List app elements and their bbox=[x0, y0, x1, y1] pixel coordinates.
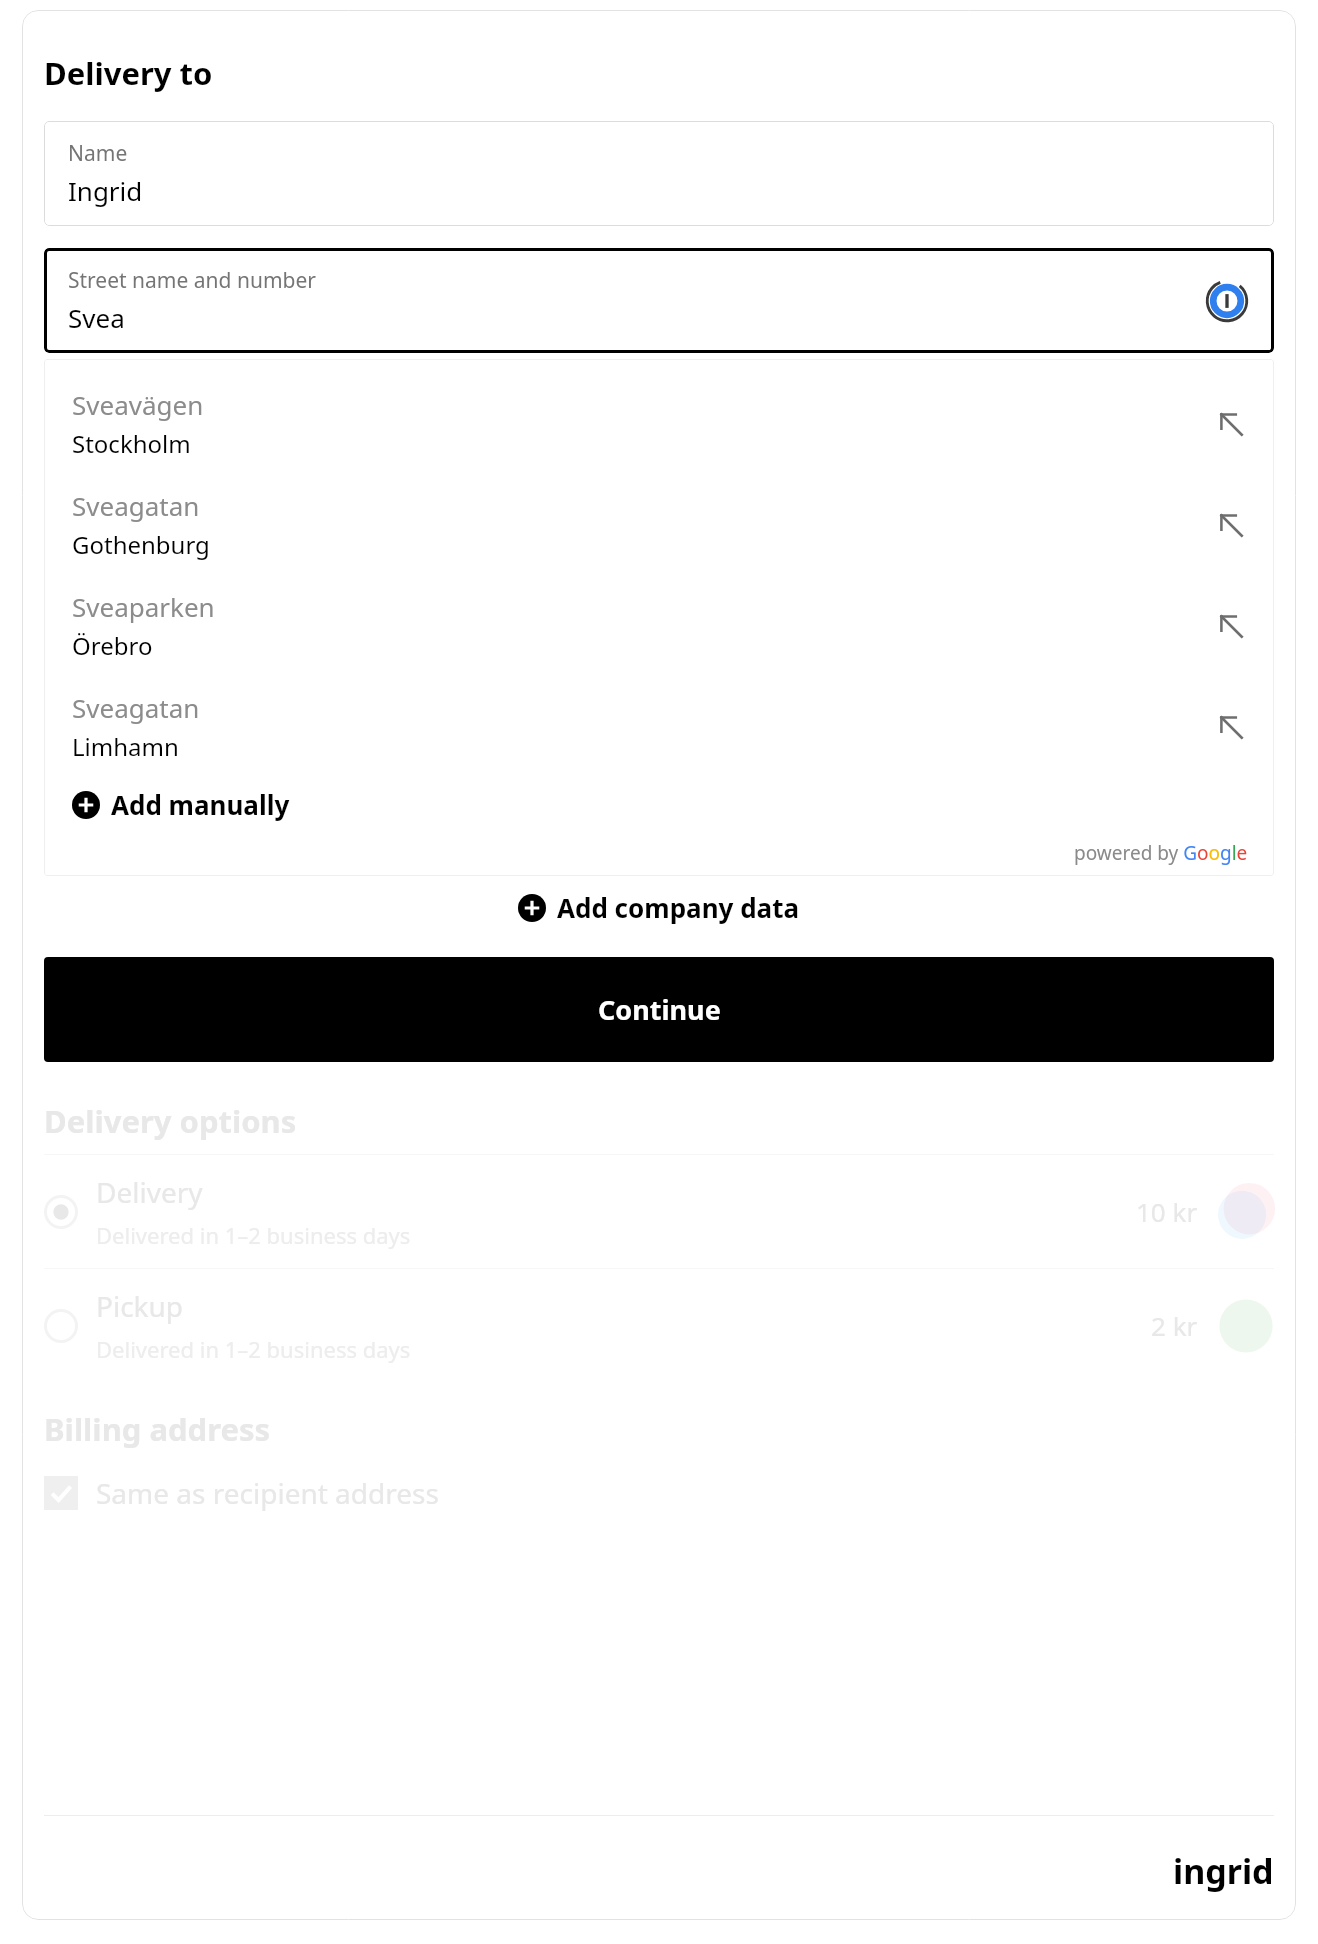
staticText: Same as recipient address bbox=[96, 1474, 439, 1512]
button[interactable]: Street name and number bbox=[44, 248, 1274, 353]
button[interactable]: Name bbox=[44, 121, 1274, 226]
button[interactable]: Continue bbox=[44, 957, 1274, 1062]
staticText: Sveagatan bbox=[72, 488, 200, 523]
staticText: Delivery to bbox=[44, 52, 213, 94]
staticText: Svea bbox=[68, 300, 125, 335]
staticText: Stockholm bbox=[72, 427, 191, 460]
staticText: Billing address bbox=[44, 1408, 271, 1450]
staticText: Ingrid bbox=[68, 173, 143, 208]
staticText: Sveavägen bbox=[72, 387, 204, 422]
staticText: Add manually bbox=[111, 787, 290, 822]
button[interactable]: Sveagatan bbox=[44, 676, 1274, 777]
button[interactable]: Add manually bbox=[44, 777, 318, 830]
staticText: Delivery options bbox=[44, 1100, 297, 1142]
button[interactable]: Pickup bbox=[44, 1269, 1274, 1382]
button[interactable]: Sveavägen bbox=[44, 373, 1274, 474]
staticText: Delivery bbox=[96, 1173, 203, 1211]
staticText: 10 kr bbox=[1136, 1194, 1198, 1229]
staticText: Örebro bbox=[72, 629, 153, 662]
staticText: Limhamn bbox=[72, 730, 179, 763]
staticText: Street name and number bbox=[68, 266, 316, 295]
staticText: Continue bbox=[598, 991, 721, 1028]
staticText: ingrid bbox=[1173, 1848, 1274, 1894]
other: Loading bbox=[1204, 278, 1250, 324]
button[interactable]: Add company data bbox=[512, 884, 806, 931]
staticText: Gothenburg bbox=[72, 528, 210, 561]
staticText: Delivered in 1–2 business days bbox=[96, 1220, 411, 1250]
staticText: Name bbox=[68, 139, 128, 168]
staticText: Add company data bbox=[557, 890, 800, 925]
staticText: Sveaparken bbox=[72, 589, 215, 624]
button[interactable]: Same as recipient address bbox=[44, 1470, 439, 1516]
staticText: Delivered in 1–2 business days bbox=[96, 1334, 411, 1364]
staticText: Pickup bbox=[96, 1287, 184, 1325]
staticText: Sveagatan bbox=[72, 690, 200, 725]
button[interactable]: Delivery bbox=[44, 1155, 1274, 1268]
staticText: 2 kr bbox=[1151, 1308, 1198, 1343]
button[interactable]: Sveagatan bbox=[44, 474, 1274, 575]
button[interactable]: Sveaparken bbox=[44, 575, 1274, 676]
staticText: powered by Google bbox=[1074, 840, 1248, 866]
